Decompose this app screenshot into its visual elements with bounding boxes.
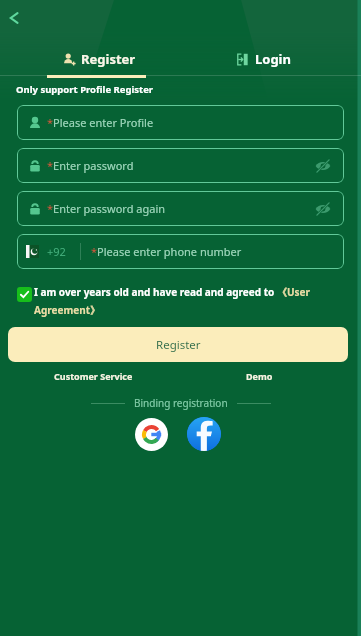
staticText: *Enter password (47, 158, 134, 173)
button[interactable]: +92 (17, 234, 344, 269)
staticText: Login (255, 50, 291, 68)
staticText: +92 (47, 244, 66, 259)
staticText: I am over years old and have read and ag… (34, 285, 349, 317)
button[interactable]: Back (1, 5, 27, 31)
button[interactable]: *Enter password (17, 148, 344, 183)
staticText: Binding registration (134, 396, 228, 410)
button[interactable]: I am over years old and have read and ag… (17, 285, 349, 317)
button[interactable]: Login (231, 46, 297, 72)
button[interactable]: Sign in with Google (135, 418, 168, 451)
staticText: Register (156, 337, 201, 353)
staticText: Demo (246, 370, 273, 382)
staticText: *Enter password again (47, 201, 166, 216)
staticText: Register (81, 50, 136, 68)
staticText: Only support Profile Register (16, 83, 154, 96)
button[interactable]: Register (57, 46, 142, 72)
button[interactable]: *Enter password again (17, 191, 344, 226)
staticText: *Please enter phone number (91, 244, 242, 259)
staticText: *Please enter Profile (47, 115, 154, 130)
button[interactable]: Customer Service (54, 370, 133, 382)
button[interactable]: Demo (246, 370, 273, 382)
button[interactable]: Toggle password visibility (315, 158, 331, 174)
button[interactable]: Sign in with Facebook (187, 417, 221, 451)
button[interactable]: *Please enter Profile (17, 105, 344, 140)
staticText: Customer Service (54, 370, 133, 382)
button[interactable]: Register (8, 327, 348, 362)
button[interactable]: Toggle password visibility (315, 201, 331, 217)
